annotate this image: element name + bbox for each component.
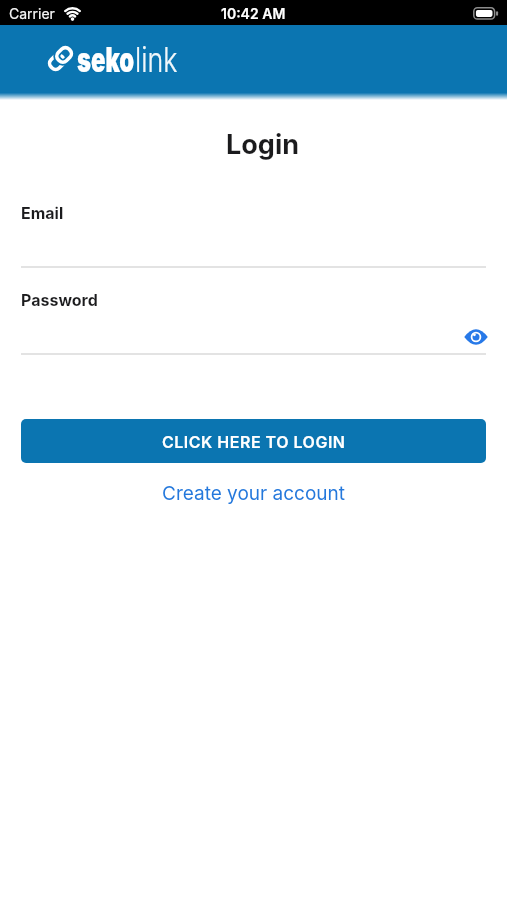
button[interactable]: Create your account [162,482,345,505]
button[interactable] [463,325,489,349]
staticText: Carrier [9,5,55,22]
staticText: Email [21,203,64,222]
staticText: seko [77,39,134,80]
staticText: link [135,39,178,80]
staticText: Password [21,290,98,309]
staticText: Create your account [162,482,345,505]
button[interactable]: CLICK HERE TO LOGIN [21,419,486,463]
staticText: 10:42 AM [221,5,286,22]
staticText: Login [226,128,300,161]
staticText: CLICK HERE TO LOGIN [162,432,346,451]
